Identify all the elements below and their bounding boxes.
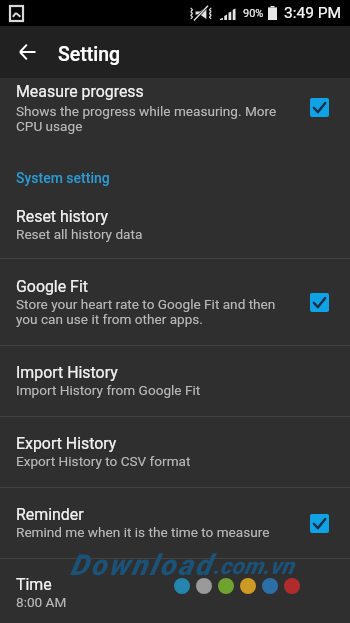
staticText: Export History xyxy=(16,434,117,453)
button[interactable]: Reset history xyxy=(0,194,350,258)
button[interactable]: Google Fit xyxy=(0,259,350,345)
button[interactable]: Color 4 xyxy=(262,578,278,594)
button[interactable]: Color 0 xyxy=(174,578,190,594)
staticText: 3:49 PM xyxy=(284,4,342,22)
staticText: Import History from Google Fit xyxy=(16,382,201,398)
button[interactable]: Toggle xyxy=(310,98,329,117)
staticText: Store your heart rate to Google Fit and … xyxy=(16,296,276,327)
button[interactable]: Time xyxy=(0,559,350,622)
button[interactable]: Export History xyxy=(0,417,350,487)
staticText: Reset all history data xyxy=(16,226,143,242)
button[interactable]: Color 2 xyxy=(218,578,234,594)
staticText: 8:00 AM xyxy=(16,594,67,610)
staticText: System setting xyxy=(16,170,110,186)
button[interactable]: Color 1 xyxy=(196,578,212,594)
button[interactable]: Measure progress xyxy=(0,78,350,136)
button[interactable]: Reminder xyxy=(0,488,350,558)
staticText: 90% xyxy=(243,7,264,20)
button[interactable]: Color 5 xyxy=(284,578,300,594)
staticText: Google Fit xyxy=(16,277,88,296)
button[interactable]: Toggle xyxy=(310,514,329,533)
staticText: Reset history xyxy=(16,207,108,226)
button[interactable]: Back xyxy=(1,26,53,78)
button[interactable]: Toggle xyxy=(310,293,329,312)
staticText: Time xyxy=(16,575,52,594)
staticText: .com.vn xyxy=(213,553,294,580)
button[interactable]: Import History xyxy=(0,346,350,416)
staticText: Measure progress xyxy=(16,82,144,101)
staticText: Reminder xyxy=(16,505,84,524)
staticText: Setting xyxy=(58,43,121,66)
staticText: Import History xyxy=(16,363,118,382)
staticText: Remind me when it is the time to measure xyxy=(16,524,270,540)
staticText: Shows the progress while measuring. More… xyxy=(16,103,277,134)
staticText: Export History to CSV format xyxy=(16,453,191,469)
button[interactable]: System setting xyxy=(0,136,350,194)
button[interactable]: Color 3 xyxy=(240,578,256,594)
staticText: Download xyxy=(70,548,213,582)
